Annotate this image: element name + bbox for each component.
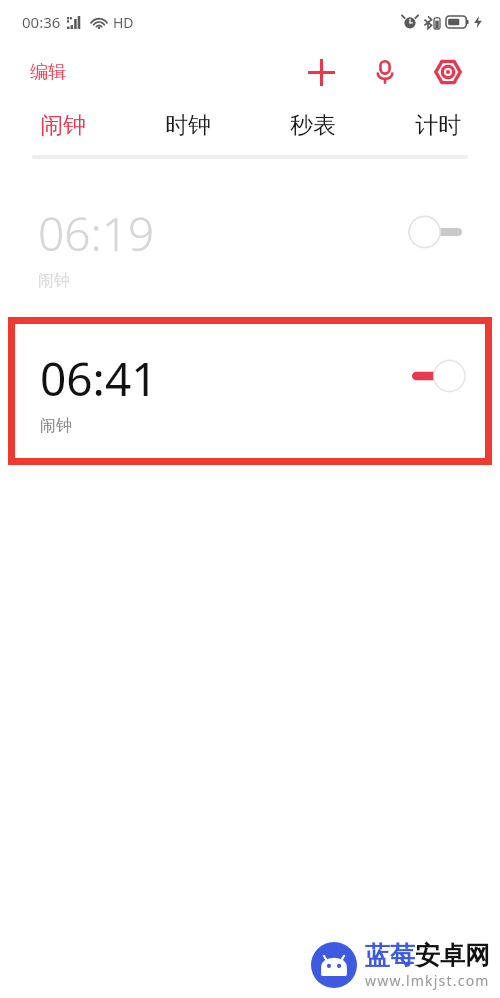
button[interactable]: Settings bbox=[426, 50, 470, 94]
staticText: 闹钟 bbox=[38, 271, 70, 291]
button[interactable]: Alarm on toggle bbox=[410, 359, 466, 393]
button[interactable]: 秒表 bbox=[250, 100, 375, 150]
staticText: 闹钟 bbox=[40, 416, 72, 436]
staticText: 蓝莓 bbox=[365, 940, 415, 971]
button[interactable]: 时钟 bbox=[125, 100, 250, 150]
staticText: 秒表 bbox=[290, 111, 336, 140]
staticText: 计时 bbox=[415, 111, 461, 140]
button[interactable]: 编辑 bbox=[18, 55, 78, 90]
staticText: 时钟 bbox=[165, 111, 211, 140]
button[interactable]: Add alarm bbox=[299, 50, 343, 94]
staticText: www.lmkjst.com bbox=[365, 971, 490, 990]
button[interactable]: 06:41 bbox=[15, 324, 485, 458]
button[interactable]: Alarm off toggle bbox=[408, 215, 464, 249]
button[interactable]: Voice bbox=[363, 50, 407, 94]
staticText: 编辑 bbox=[30, 61, 66, 84]
staticText: 安卓网 bbox=[415, 940, 490, 971]
staticText: HD bbox=[113, 13, 134, 32]
button[interactable]: 06:19 bbox=[0, 194, 500, 299]
staticText: 06:19 bbox=[38, 202, 155, 265]
button[interactable]: 计时 bbox=[375, 100, 500, 150]
button[interactable]: 闹钟 bbox=[0, 100, 125, 150]
staticText: 00:36 bbox=[22, 12, 61, 32]
staticText: 06:41 bbox=[40, 347, 158, 410]
staticText: 闹钟 bbox=[40, 111, 86, 140]
